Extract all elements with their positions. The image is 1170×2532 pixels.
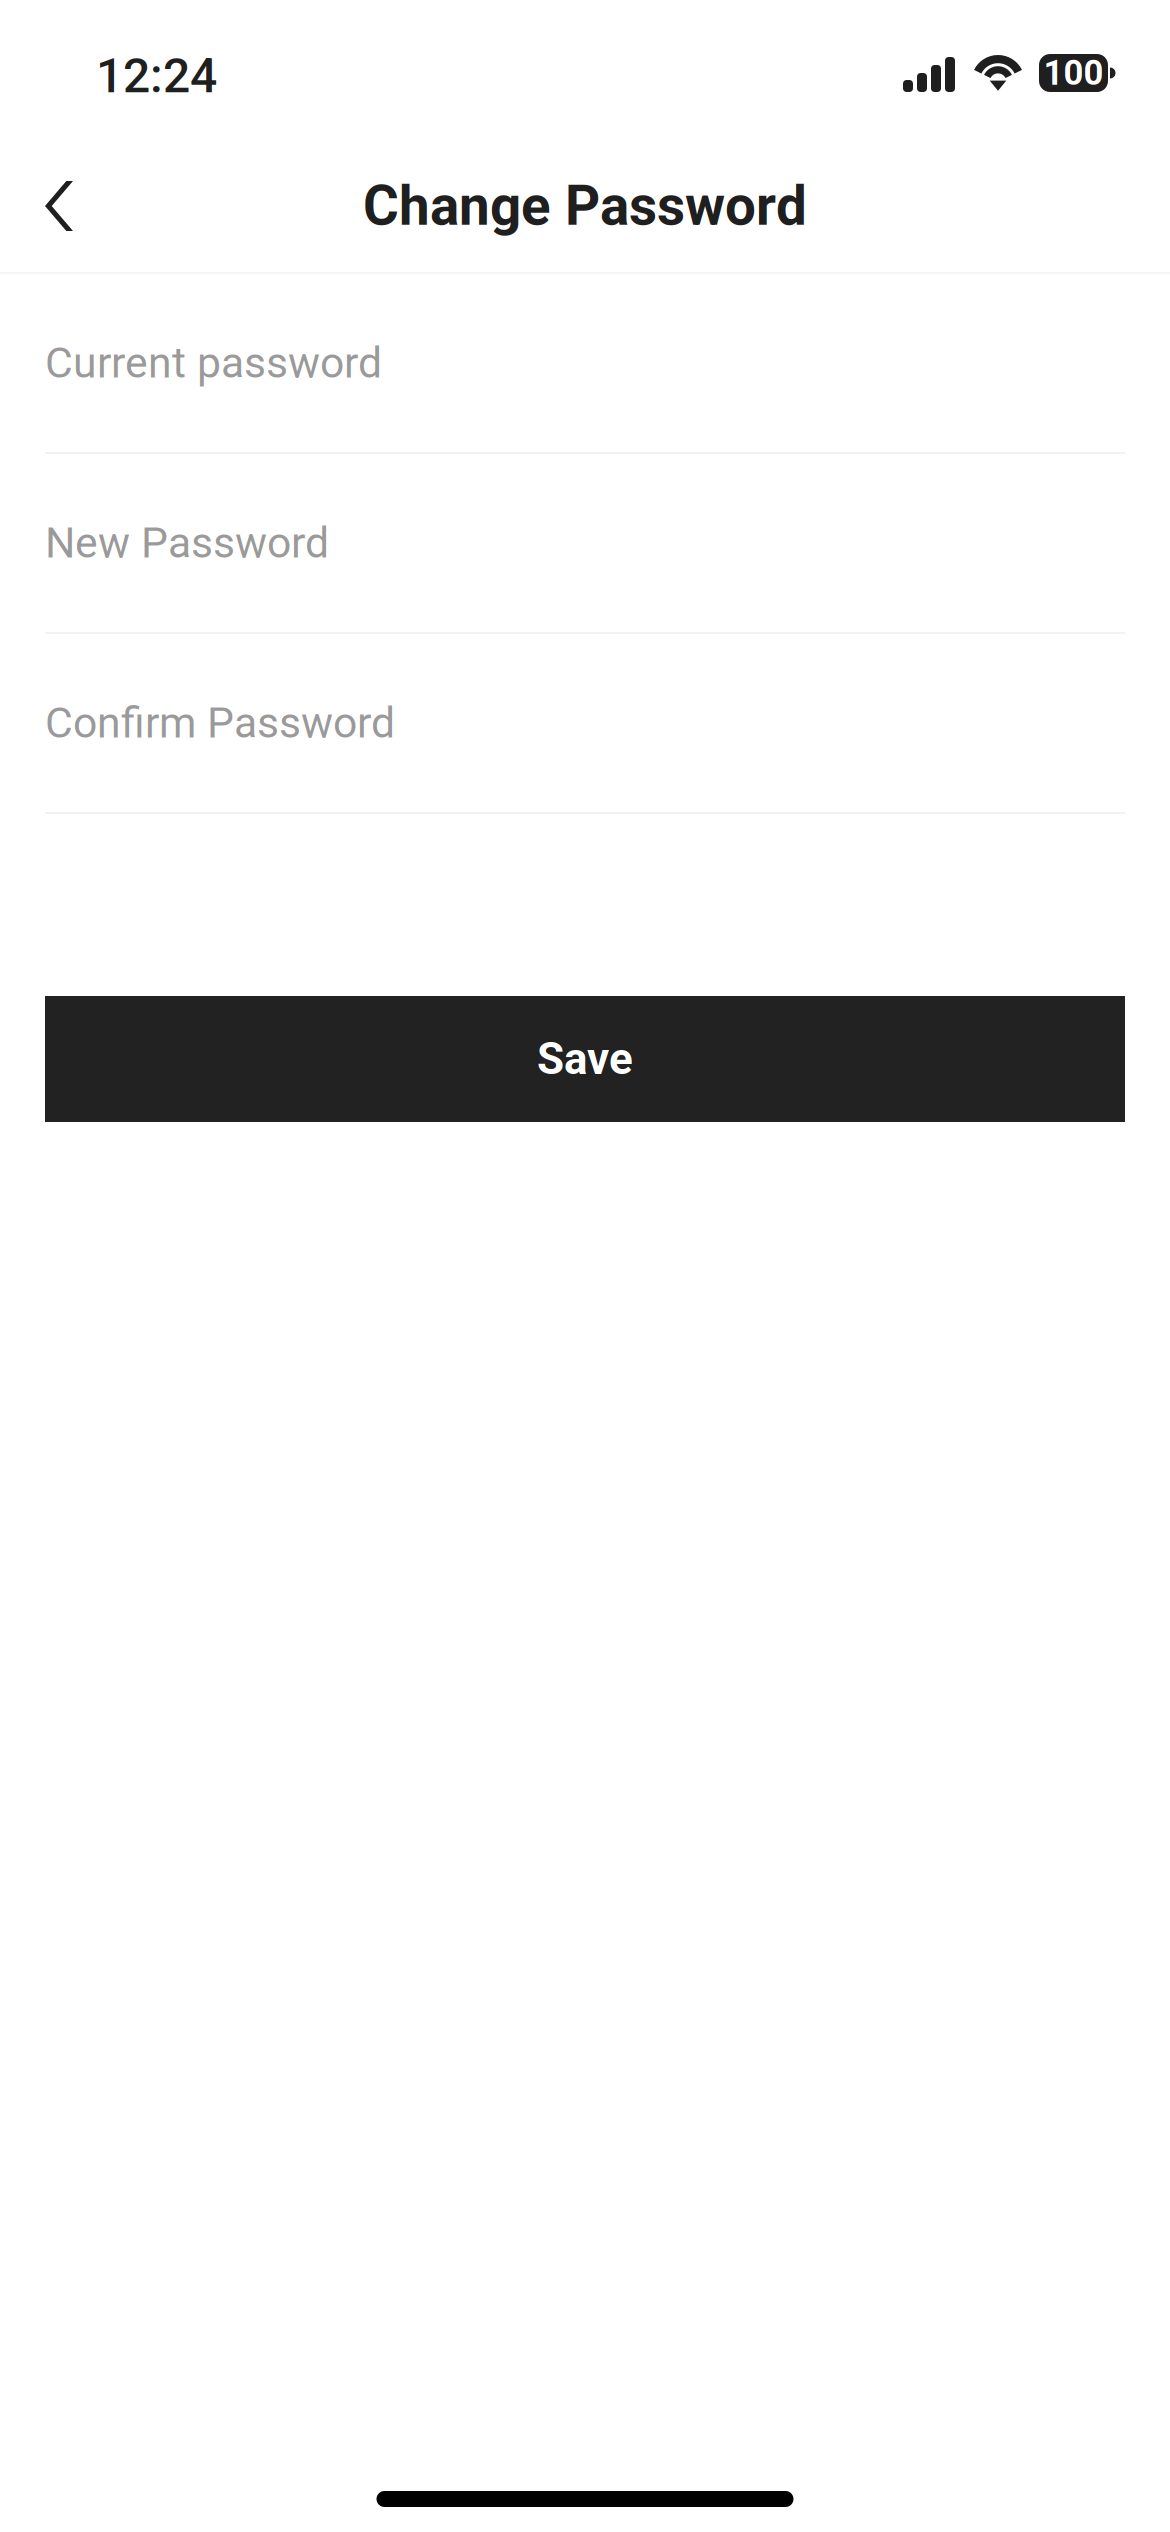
staticText: Change Password [363, 174, 807, 238]
staticText: Confirm Password [45, 698, 395, 748]
staticText: Save [537, 1033, 633, 1085]
staticText: New Password [45, 518, 329, 568]
staticText: Current password [45, 338, 382, 388]
staticText: 100 [1043, 53, 1103, 93]
staticText: 12:24 [96, 48, 217, 104]
button[interactable]: Save [45, 996, 1125, 1122]
button[interactable]: Back [0, 140, 114, 272]
